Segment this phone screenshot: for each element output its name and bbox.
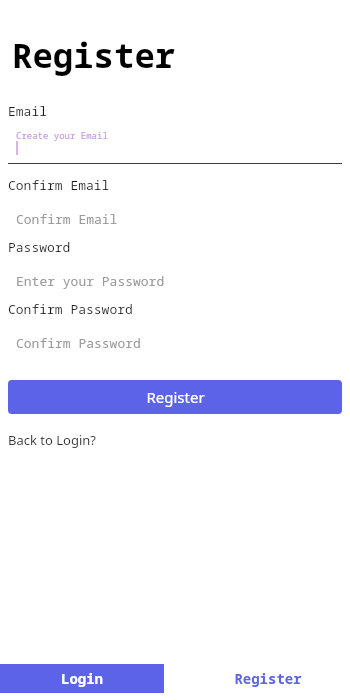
staticText: Enter your Password <box>16 272 165 290</box>
staticText: Password <box>8 238 71 256</box>
button[interactable]: Login <box>0 664 164 693</box>
button[interactable]: Back to Login? <box>8 431 96 449</box>
staticText: Login <box>61 669 103 688</box>
staticText: Confirm Email <box>8 176 110 194</box>
staticText: Back to Login? <box>8 431 96 449</box>
button[interactable]: Enter your Password <box>0 262 350 300</box>
button[interactable]: Confirm Password <box>0 324 350 362</box>
staticText: Email <box>8 102 48 120</box>
staticText: Create your Email <box>16 129 108 141</box>
button[interactable]: Register <box>8 380 342 414</box>
staticText: Confirm Password <box>16 334 141 352</box>
button[interactable]: Register <box>186 664 350 693</box>
staticText: Register <box>146 387 205 407</box>
button[interactable]: Confirm Email <box>0 200 350 238</box>
staticText: Confirm Password <box>8 300 133 318</box>
staticText: Register <box>12 32 176 78</box>
staticText: Register <box>234 669 302 688</box>
staticText: Confirm Email <box>16 210 118 228</box>
button[interactable]: Create your Email <box>0 126 350 164</box>
